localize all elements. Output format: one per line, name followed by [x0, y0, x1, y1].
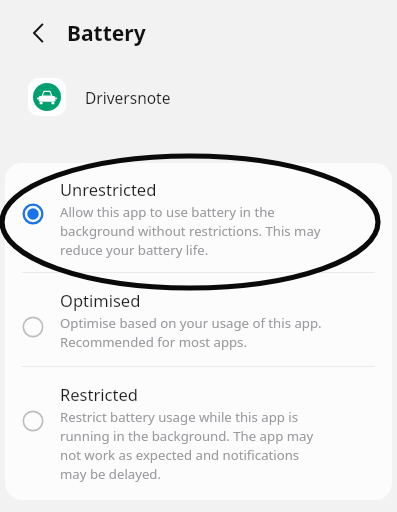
- button[interactable]: Optimised: [5, 273, 392, 366]
- staticText: Driversnote: [85, 87, 171, 108]
- staticText: Unrestricted: [60, 178, 157, 200]
- staticText: Battery: [67, 19, 146, 48]
- button[interactable]: Unrestricted: [5, 163, 392, 272]
- staticText: Allow this app to use battery in the bac…: [60, 203, 321, 258]
- staticText: Restricted: [60, 383, 138, 405]
- button[interactable]: Back: [22, 16, 56, 50]
- staticText: Optimised: [60, 289, 141, 311]
- staticText: Optimise based on your usage of this app…: [60, 314, 322, 350]
- button[interactable]: Restricted: [5, 367, 392, 500]
- staticText: Restrict battery usage while this app is…: [60, 408, 314, 482]
